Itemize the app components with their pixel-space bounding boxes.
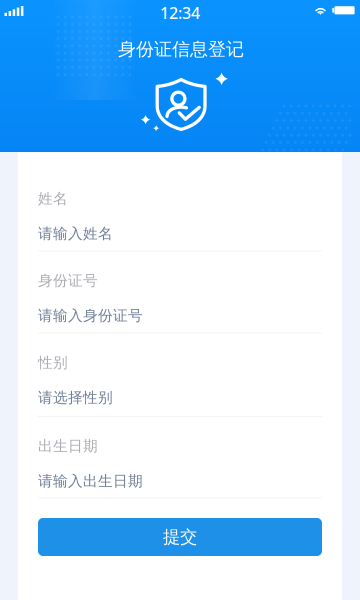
staticText: 身份证号 [38, 271, 98, 290]
button[interactable]: 姓名 [18, 169, 342, 251]
staticText: 性别 [38, 353, 68, 372]
staticText: 身份证信息登记 [118, 38, 244, 61]
staticText: 姓名 [38, 189, 68, 208]
staticText: 请输入身份证号 [38, 306, 143, 325]
staticText: 请输入姓名 [38, 224, 113, 243]
button[interactable]: 性别 [18, 333, 342, 417]
button[interactable]: 身份证号 [18, 251, 342, 333]
staticText: 请选择性别 [38, 388, 113, 407]
staticText: 出生日期 [38, 437, 98, 455]
staticText: 请输入出生日期 [38, 472, 143, 490]
staticText: 12:34 [160, 2, 200, 24]
button[interactable]: 提交 [38, 518, 322, 556]
button[interactable]: 出生日期 [18, 417, 342, 498]
staticText: 提交 [163, 526, 197, 548]
